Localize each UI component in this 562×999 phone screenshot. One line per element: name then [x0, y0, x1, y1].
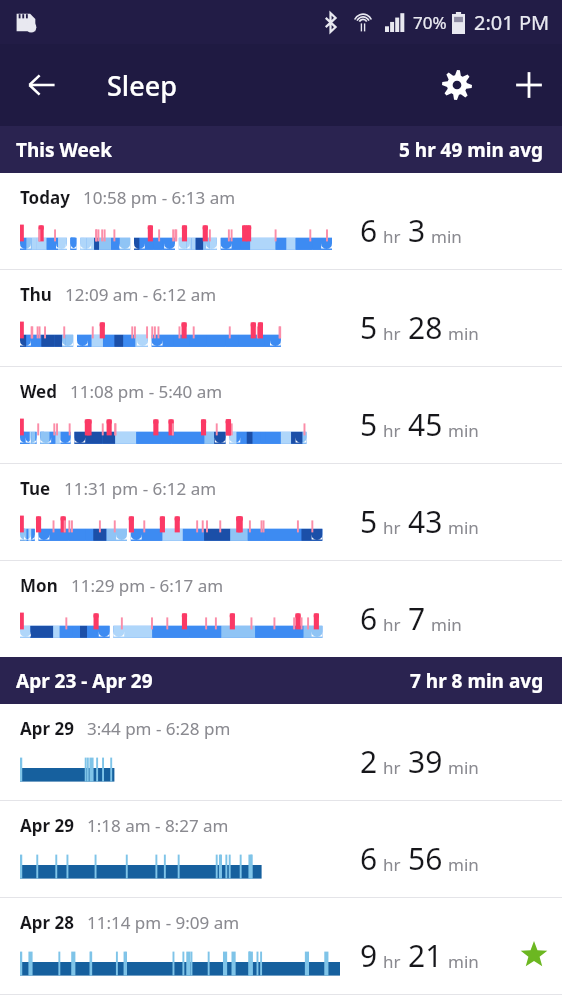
staticText: 5 hr 49 min avg: [399, 137, 544, 163]
staticText: Tue: [20, 477, 51, 500]
staticText: This Week: [16, 137, 112, 163]
staticText: min: [431, 613, 462, 636]
staticText: 45: [408, 404, 443, 445]
staticText: hr: [383, 756, 401, 779]
staticText: 7 hr 8 min avg: [410, 668, 544, 694]
staticText: 39: [408, 741, 443, 782]
staticText: 5: [360, 404, 378, 445]
staticText: 7: [408, 598, 426, 639]
staticText: min: [448, 516, 479, 539]
staticText: 56: [408, 838, 443, 879]
button[interactable]: Add sleep log: [502, 58, 556, 112]
button[interactable]: This Week: [0, 126, 562, 173]
staticText: 43: [408, 501, 443, 542]
staticText: 6: [360, 838, 378, 879]
button[interactable]: Mon: [0, 561, 562, 657]
staticText: hr: [383, 225, 401, 248]
staticText: 3: [408, 210, 426, 251]
staticText: Mon: [20, 574, 58, 597]
staticText: 5: [360, 501, 378, 542]
staticText: 11:14 pm - 9:09 am: [87, 911, 240, 934]
staticText: Apr 29: [20, 717, 74, 740]
staticText: 3:44 pm - 6:28 pm: [87, 717, 231, 740]
staticText: Apr 23 - Apr 29: [16, 668, 153, 694]
button[interactable]: Today: [0, 173, 562, 269]
staticText: min: [431, 225, 462, 248]
staticText: hr: [383, 950, 401, 973]
staticText: Sleep: [107, 67, 177, 104]
staticText: hr: [383, 419, 401, 442]
staticText: Apr 28: [20, 911, 74, 934]
staticText: min: [448, 322, 479, 345]
staticText: 12:09 am - 6:12 am: [65, 283, 217, 306]
button[interactable]: Thu: [0, 270, 562, 366]
staticText: Thu: [20, 283, 52, 306]
staticText: min: [448, 756, 479, 779]
staticText: 11:29 pm - 6:17 am: [71, 574, 224, 597]
staticText: 21: [408, 935, 443, 976]
staticText: 28: [408, 307, 443, 348]
staticText: 11:08 pm - 5:40 am: [70, 380, 223, 403]
staticText: 6: [360, 598, 378, 639]
staticText: 11:31 pm - 6:12 am: [64, 477, 217, 500]
staticText: 6: [360, 210, 378, 251]
button[interactable]: Apr 28: [0, 898, 562, 994]
staticText: 2:01 PM: [474, 9, 550, 36]
button[interactable]: Back: [14, 57, 70, 113]
button[interactable]: Wed: [0, 367, 562, 463]
button[interactable]: Settings: [430, 58, 484, 112]
staticText: 5: [360, 307, 378, 348]
staticText: 10:58 pm - 6:13 am: [83, 186, 236, 209]
staticText: 9: [360, 935, 378, 976]
staticText: Today: [20, 186, 70, 209]
button[interactable]: Apr 23 - Apr 29: [0, 657, 562, 704]
button[interactable]: Tue: [0, 464, 562, 560]
staticText: min: [448, 419, 479, 442]
staticText: Wed: [20, 380, 57, 403]
staticText: hr: [383, 516, 401, 539]
button[interactable]: Apr 29: [0, 704, 562, 800]
staticText: 1:18 am - 8:27 am: [87, 814, 229, 837]
staticText: 70%: [413, 11, 447, 34]
staticText: hr: [383, 322, 401, 345]
staticText: 2: [360, 741, 378, 782]
staticText: Apr 29: [20, 814, 74, 837]
staticText: hr: [383, 853, 401, 876]
staticText: min: [448, 853, 479, 876]
staticText: hr: [383, 613, 401, 636]
button[interactable]: Apr 29: [0, 801, 562, 897]
staticText: min: [448, 950, 479, 973]
